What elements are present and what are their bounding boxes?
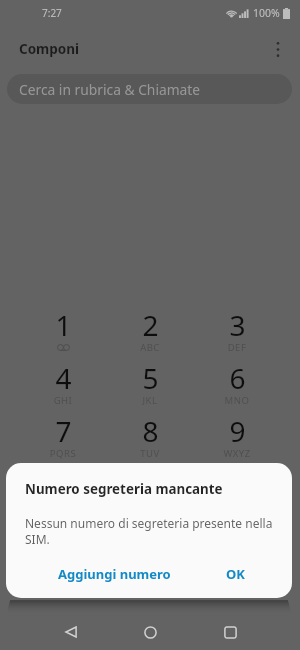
staticText: 100% [253, 6, 280, 20]
staticText: 4 [55, 359, 72, 397]
staticText: 6 [229, 359, 246, 397]
staticText: ABC [121, 341, 179, 354]
staticText: Cerca in rubrica & Chiamate [19, 80, 201, 99]
button[interactable]: 4 [34, 359, 92, 412]
button[interactable]: 2 [121, 306, 179, 359]
button[interactable]: Cerca in rubrica & Chiamate [7, 74, 292, 104]
button[interactable]: 1 [34, 306, 92, 359]
staticText: TUV [121, 447, 179, 460]
staticText: 7:27 [42, 6, 62, 20]
staticText: Nessun numero di segreteria presente nel… [25, 515, 277, 548]
button[interactable]: 5 [121, 359, 179, 412]
staticText: 1 [55, 306, 72, 344]
staticText: 7 [55, 412, 72, 450]
button[interactable]: 8 [121, 412, 179, 465]
button[interactable]: Home [130, 612, 171, 650]
staticText: 2 [142, 306, 159, 344]
staticText: PQRS [34, 447, 92, 460]
button[interactable]: Back [50, 612, 91, 650]
button[interactable]: More options [264, 35, 292, 63]
staticText: 5 [142, 359, 159, 397]
button[interactable]: 6 [208, 359, 266, 412]
button[interactable]: 7 [34, 412, 92, 465]
staticText: DEF [208, 341, 266, 354]
staticText: 3 [229, 306, 246, 344]
button[interactable]: 9 [208, 412, 266, 465]
staticText: Numero segreteria mancante [25, 480, 223, 498]
button[interactable]: OK [218, 560, 253, 588]
staticText: GHI [34, 394, 92, 407]
button[interactable]: Aggiungi numero [50, 560, 179, 588]
staticText: WXYZ [208, 447, 266, 460]
staticText: Aggiungi numero [58, 565, 171, 583]
button[interactable]: 3 [208, 306, 266, 359]
staticText: MNO [208, 394, 266, 407]
staticText: OK [226, 565, 245, 583]
staticText: 9 [229, 412, 246, 450]
staticText: Componi [19, 40, 80, 58]
staticText: 8 [142, 412, 159, 450]
button[interactable]: Recent apps [210, 612, 251, 650]
